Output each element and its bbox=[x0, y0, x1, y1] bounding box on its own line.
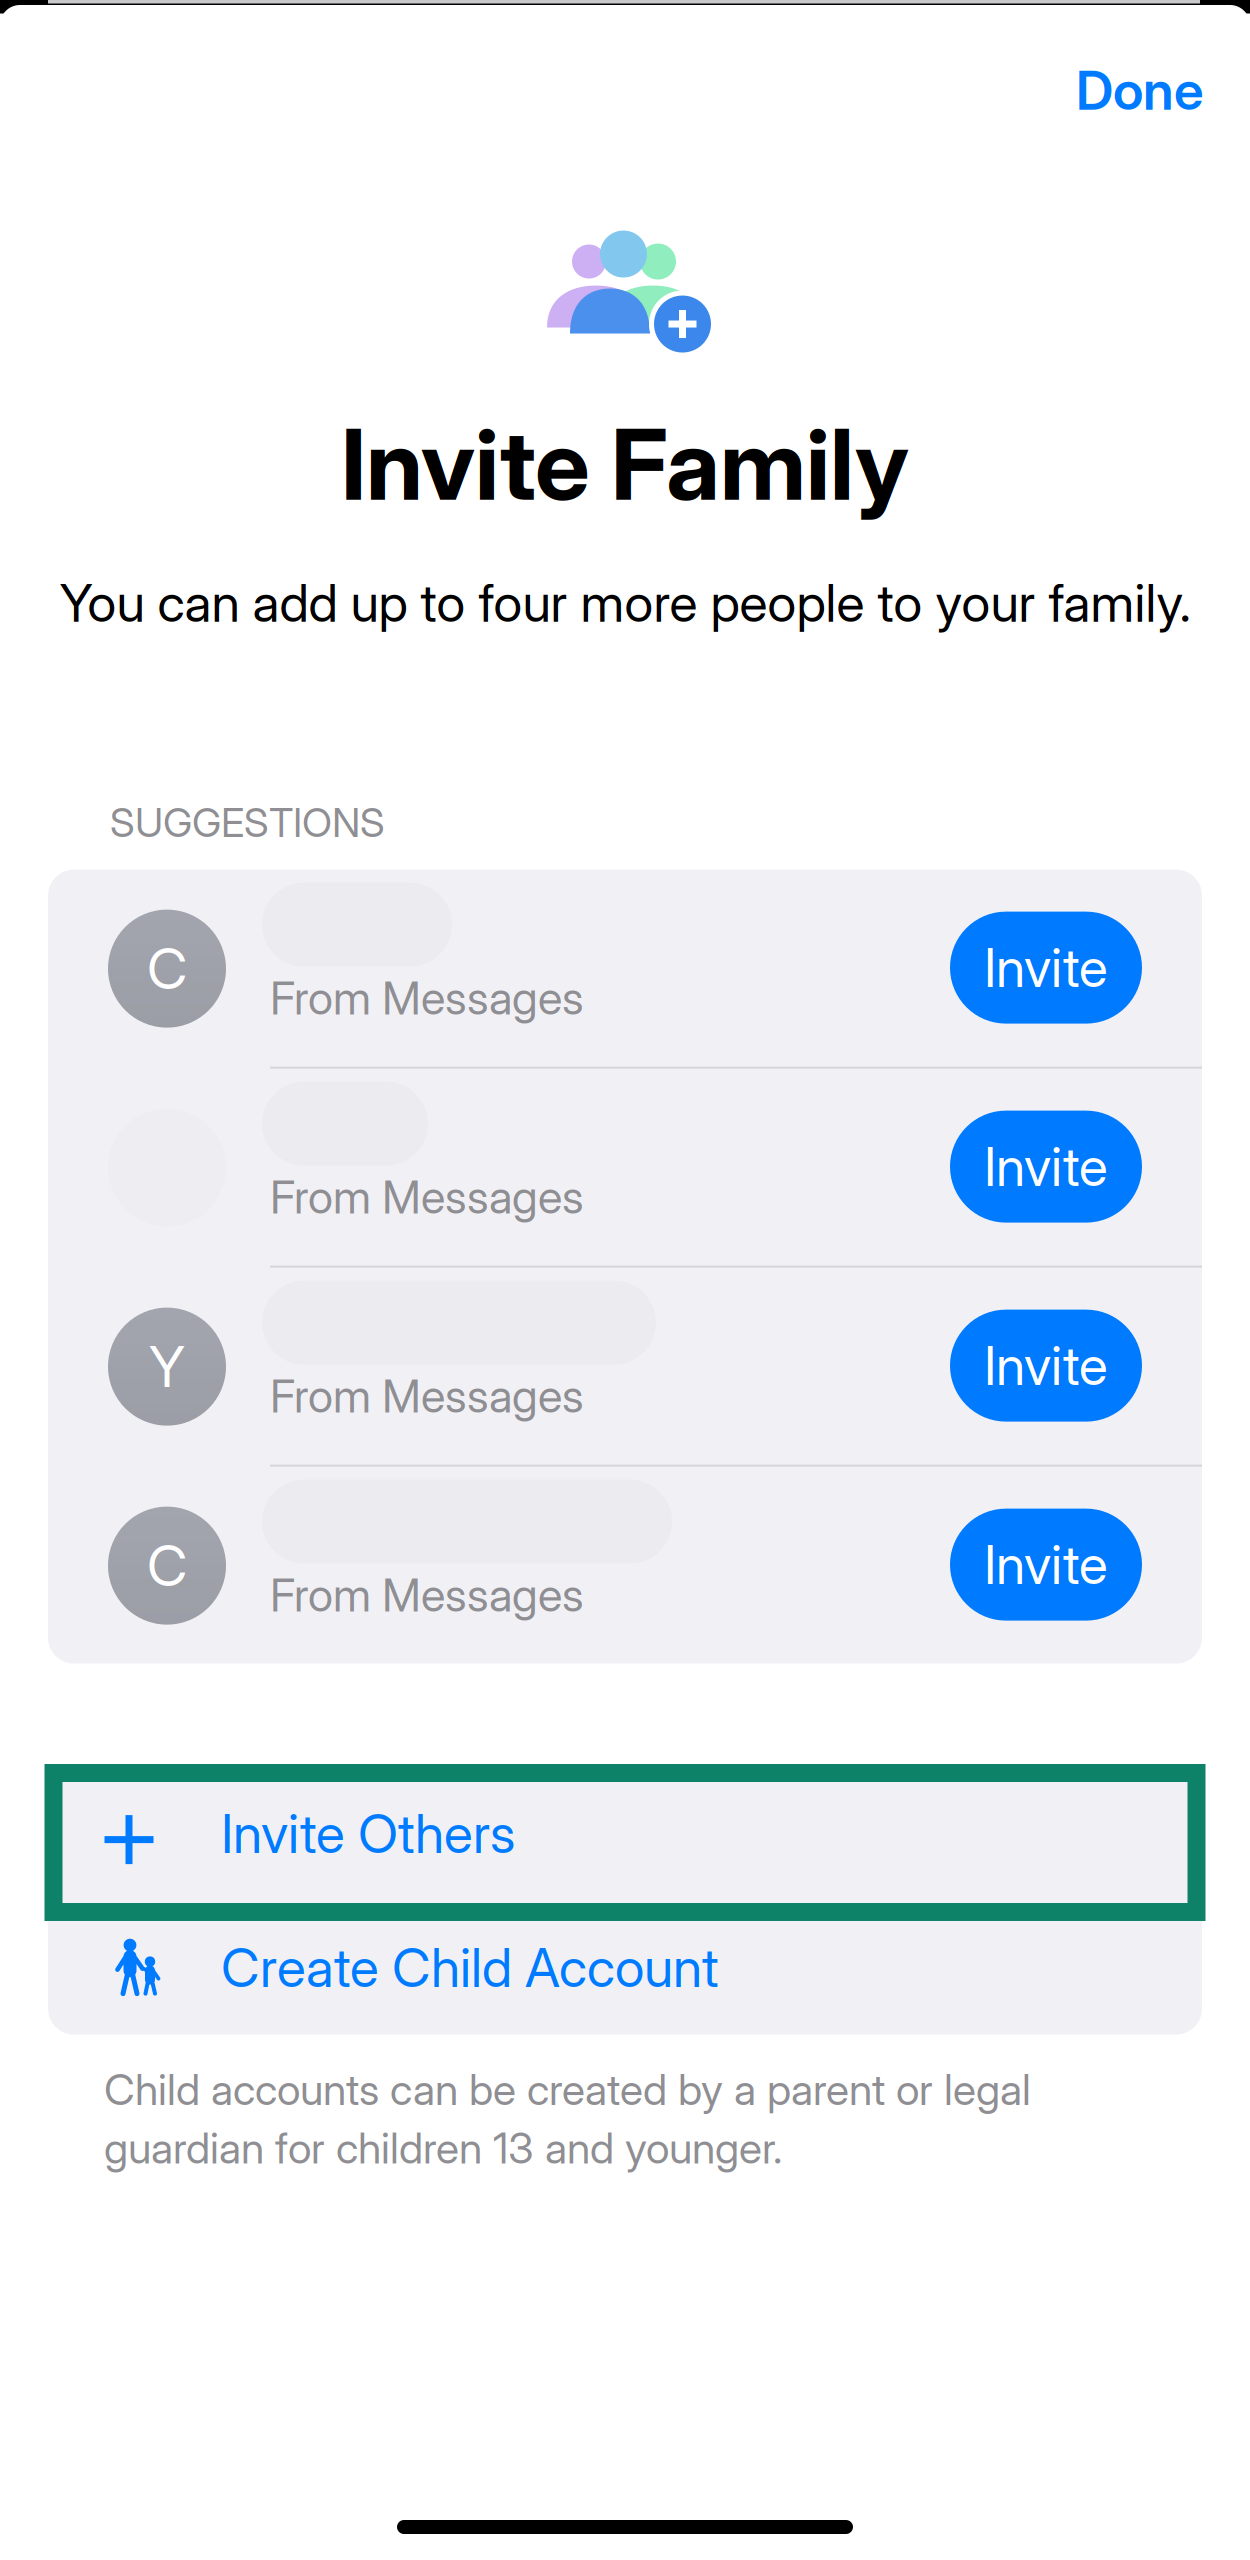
button[interactable]: Done bbox=[1058, 44, 1222, 136]
staticText: Create Child Account bbox=[221, 1935, 719, 2000]
staticText: Child accounts can be created by a paren… bbox=[104, 2064, 1031, 2174]
staticText: Y bbox=[149, 1333, 185, 1400]
staticText: Invite bbox=[984, 1532, 1108, 1597]
staticText: C bbox=[147, 935, 187, 1002]
button[interactable]: Create Child Account bbox=[48, 1901, 1202, 2035]
staticText: You can add up to four more people to yo… bbox=[59, 571, 1190, 634]
staticText: From Messages bbox=[270, 971, 584, 1025]
button[interactable]: Invite bbox=[950, 912, 1142, 1024]
staticText: Invite bbox=[984, 1333, 1108, 1398]
staticText: Done bbox=[1076, 58, 1204, 122]
button[interactable]: Invite bbox=[950, 1111, 1142, 1223]
staticText: Invite Family bbox=[341, 405, 909, 523]
staticText: Invite bbox=[984, 935, 1108, 1000]
button[interactable]: Invite bbox=[950, 1509, 1142, 1621]
button[interactable]: Invite bbox=[950, 1310, 1142, 1422]
staticText: From Messages bbox=[270, 1170, 584, 1224]
staticText: SUGGESTIONS bbox=[110, 798, 385, 847]
button[interactable]: Invite Others bbox=[48, 1767, 1202, 1901]
staticText: Invite Others bbox=[221, 1801, 515, 1866]
staticText: From Messages bbox=[270, 1369, 584, 1423]
staticText: From Messages bbox=[270, 1568, 584, 1622]
staticText: Invite bbox=[984, 1134, 1108, 1199]
staticText: C bbox=[147, 1532, 187, 1599]
